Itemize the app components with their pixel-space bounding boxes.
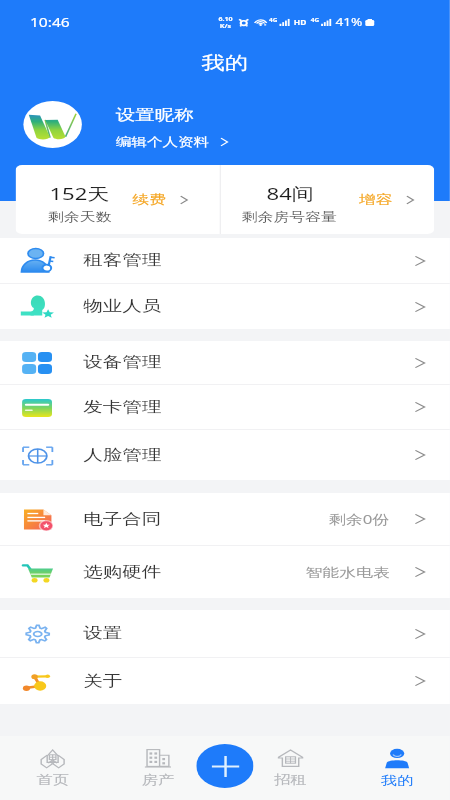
button[interactable]: 选购硬件 [0,546,450,598]
staticText: 剩余天数 [48,209,112,224]
staticText: 我的 [201,52,248,75]
button[interactable]: 招租 [237,736,343,800]
staticText: 41% [335,15,363,29]
staticText: 租客管理 [83,251,161,270]
button[interactable]: 设置 [0,610,450,657]
staticText: 续费 [133,192,166,208]
staticText: 剩余房号容量 [242,209,338,224]
staticText: 6.10 [218,15,233,22]
staticText: K/s [220,22,231,29]
staticText: 首页 [36,772,69,788]
staticText: 152天 [49,182,110,205]
button[interactable]: 物业人员 [0,284,450,329]
button[interactable]: 84间 [221,165,434,234]
staticText: 4G [269,17,278,24]
button[interactable]: 首页 [0,736,105,800]
button[interactable]: 关于 [0,658,450,704]
button[interactable]: 租客管理 [0,238,450,283]
staticText: 招租 [274,772,307,788]
staticText: 物业人员 [83,297,161,316]
staticText: 电子合同 [83,510,161,529]
staticText: 剩余0份 [329,510,390,528]
button[interactable]: 发卡管理 [0,385,450,429]
button[interactable]: 我的 [343,736,450,800]
staticText: 人脸管理 [83,446,161,465]
staticText: 设置昵称 [116,106,194,125]
staticText: 选购硬件 [83,563,161,582]
staticText: 发卡管理 [83,398,161,417]
staticText: 10:46 [30,14,70,30]
button[interactable]: 设备管理 [0,341,450,384]
button[interactable]: 房产 [105,736,211,800]
staticText: 设备管理 [83,353,161,372]
button[interactable]: 电子合同 [0,493,450,545]
staticText: 我的 [381,773,413,789]
button[interactable]: 152天 [16,165,220,234]
staticText: 房产 [142,772,174,788]
staticText: 增容 [359,192,393,208]
button[interactable]: 人脸管理 [0,430,450,480]
staticText: 编辑个人资料 [116,134,209,149]
staticText: 84间 [266,182,315,205]
staticText: 4G [311,17,320,24]
staticText: 设置 [83,624,122,643]
staticText: 智能水电表 [305,564,390,580]
staticText: 关于 [83,672,122,691]
button[interactable]: Add [196,744,253,788]
staticText: HD [294,18,307,27]
